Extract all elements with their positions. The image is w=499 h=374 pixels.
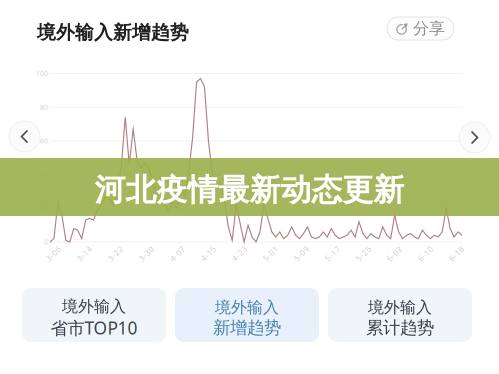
staticText: 3-30 bbox=[137, 248, 155, 259]
staticText: 5-01 bbox=[261, 248, 279, 259]
button[interactable]: 境外输入 bbox=[175, 288, 319, 342]
staticText: 6-10 bbox=[416, 248, 434, 259]
staticText: 4-15 bbox=[199, 248, 217, 259]
staticText: 累计趋势 bbox=[366, 317, 434, 338]
staticText: 分享 bbox=[413, 19, 445, 38]
staticText: 60 bbox=[40, 136, 48, 145]
staticText: 境外输入 bbox=[368, 297, 432, 317]
staticText: 6-02 bbox=[385, 248, 403, 259]
staticText: 5-09 bbox=[292, 248, 310, 259]
staticText: 5-17 bbox=[323, 248, 341, 259]
staticText: 新增趋势 bbox=[213, 317, 281, 338]
staticText: 6-18 bbox=[447, 248, 465, 259]
staticText: 境外输入 bbox=[215, 297, 279, 317]
staticText: 3-14 bbox=[75, 248, 93, 259]
staticText: 4-23 bbox=[230, 248, 248, 259]
staticText: 3-06 bbox=[44, 248, 62, 259]
staticText: 省市TOP10 bbox=[50, 316, 137, 339]
staticText: 80 bbox=[40, 103, 48, 112]
staticText: 3-22 bbox=[106, 248, 124, 259]
staticText: 100 bbox=[36, 69, 48, 78]
button[interactable]: 境外输入 bbox=[22, 288, 166, 342]
staticText: 境外输入 bbox=[62, 297, 126, 316]
staticText: 5-25 bbox=[354, 248, 372, 259]
staticText: 境外输入新增趋势 bbox=[37, 21, 189, 44]
staticText: 4-07 bbox=[168, 248, 186, 259]
staticText: 0 bbox=[44, 238, 48, 246]
button[interactable]: 分享 bbox=[387, 17, 454, 40]
staticText: 河北疫情最新动态更新 bbox=[94, 171, 404, 209]
button[interactable]: 境外输入 bbox=[328, 288, 472, 342]
button[interactable]: Next chart bbox=[459, 122, 490, 153]
button[interactable]: Previous chart bbox=[9, 121, 40, 152]
